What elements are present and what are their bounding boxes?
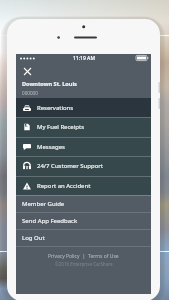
staticText: Log Out bbox=[22, 234, 45, 242]
button[interactable]: Close bbox=[16, 65, 38, 77]
staticText: | bbox=[80, 253, 88, 260]
staticText: 11:19 AM bbox=[73, 55, 95, 62]
button[interactable]: My Fuel Receipts bbox=[16, 117, 151, 136]
staticText: ©2016 Enterprise CarShare bbox=[55, 261, 113, 267]
staticText: Report an Accident bbox=[37, 182, 91, 190]
button[interactable]: Log Out bbox=[16, 229, 151, 246]
staticText: Downtown St. Louis bbox=[22, 80, 77, 88]
button[interactable]: Terms of Use bbox=[88, 253, 119, 260]
staticText: Member Guide bbox=[22, 200, 65, 208]
staticText: 000000 bbox=[22, 90, 38, 96]
button[interactable]: Member Guide bbox=[16, 195, 151, 212]
staticText: Reservations bbox=[37, 104, 74, 112]
staticText: My Fuel Receipts bbox=[37, 123, 85, 131]
staticText: Send App Feedback bbox=[22, 217, 78, 225]
button[interactable]: 24/7 Customer Support bbox=[16, 156, 151, 175]
button[interactable]: Reservations bbox=[16, 98, 151, 117]
button[interactable]: Send App Feedback bbox=[16, 212, 151, 229]
button[interactable]: Report an Accident bbox=[16, 176, 151, 195]
button[interactable]: Messages bbox=[16, 137, 151, 156]
button[interactable]: Privacy Policy bbox=[48, 253, 80, 260]
staticText: 24/7 Customer Support bbox=[37, 162, 103, 170]
staticText: Messages bbox=[37, 143, 65, 151]
